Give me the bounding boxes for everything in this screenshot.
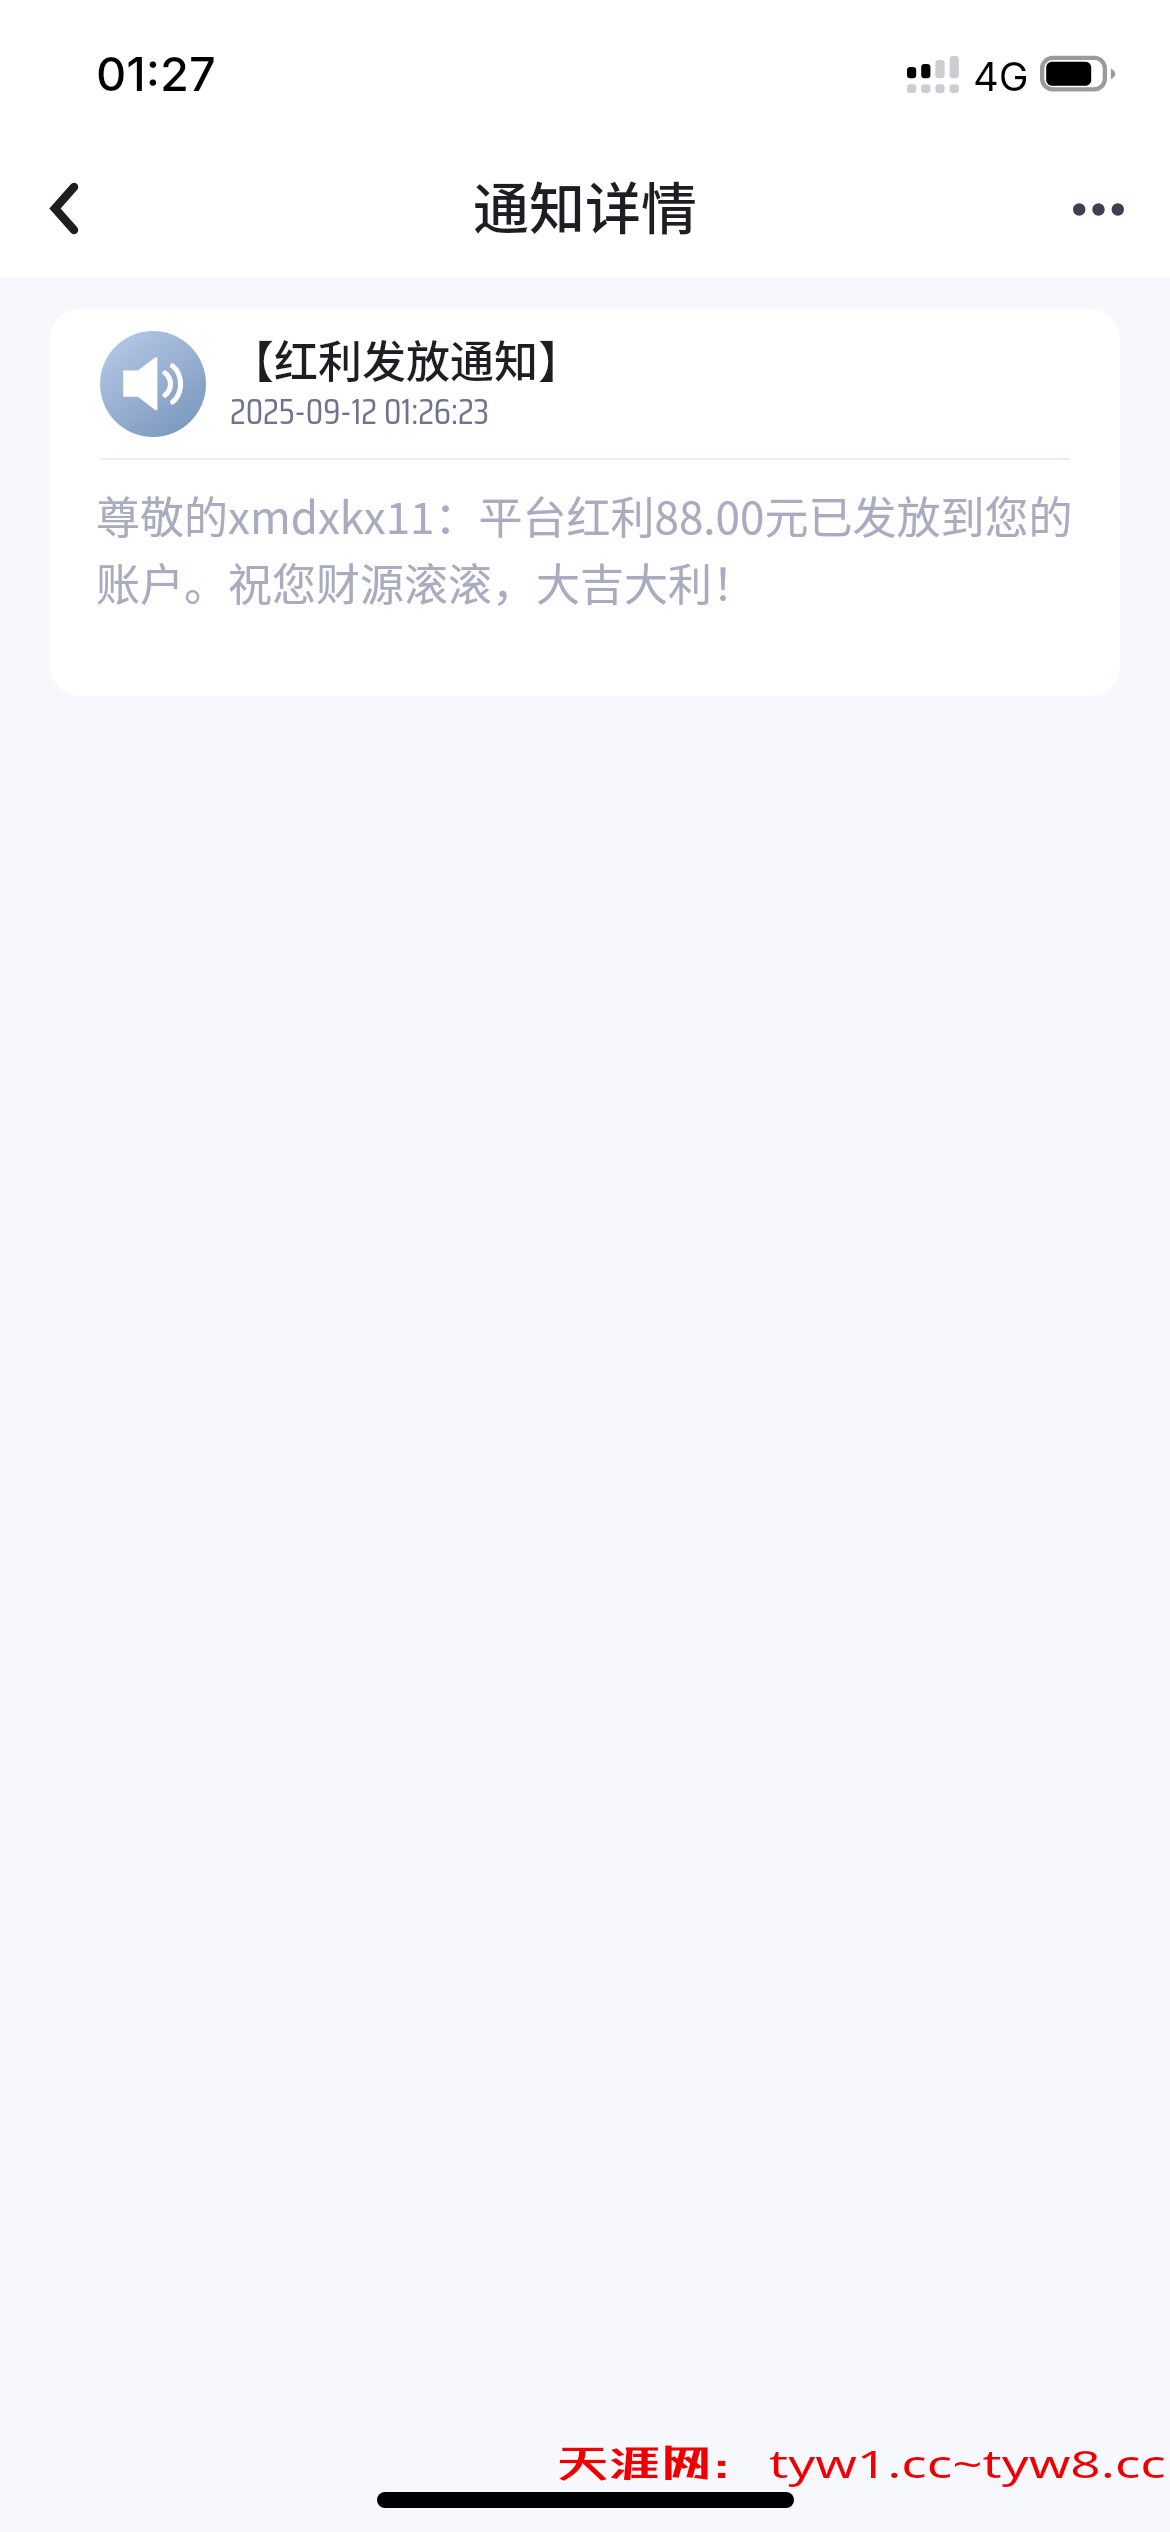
staticText: 4G (973, 52, 1029, 100)
button[interactable]: More options (1045, 159, 1145, 259)
button[interactable]: Back (14, 158, 114, 258)
button[interactable]: 【红利发放通知】 (50, 309, 1120, 696)
staticText: 天涯网： (556, 2441, 765, 2485)
staticText: 2025-09-12 01:26:23 (230, 383, 489, 440)
staticText: 通知详情 (473, 164, 697, 245)
staticText: 【红利发放通知】 (230, 327, 582, 391)
staticText: tyw1.cc~tyw8.cc (769, 2436, 1166, 2489)
staticText: 01:27 (96, 45, 216, 102)
staticText: 尊敬的xmdxkx11：平台红利88.00元已发放到您的账户。祝您财源滚滚，大吉… (96, 480, 1076, 614)
